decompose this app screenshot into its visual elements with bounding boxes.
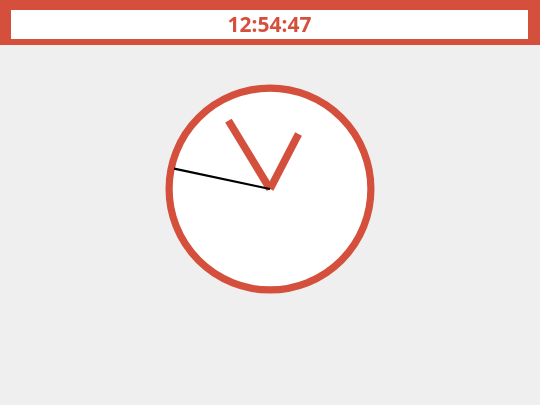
button[interactable]: 12:54:47	[0, 0, 540, 45]
button[interactable]: Analog clock showing 12:54:47	[165, 84, 375, 294]
staticText: 12:54:47	[11, 10, 528, 39]
